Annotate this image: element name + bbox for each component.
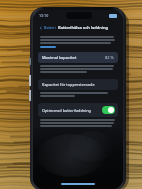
staticText: Batterihälsa och laddning — [58, 25, 109, 30]
staticText: Kapacitet för toppresterande — [42, 82, 95, 87]
button[interactable]: Optimerad batteriladdning — [38, 103, 118, 117]
button[interactable]: Maximal kapacitet — [38, 52, 118, 63]
button[interactable]: Kapacitet för toppresterande — [38, 79, 118, 90]
staticText: 82 % — [105, 55, 114, 60]
staticText: Batteri — [44, 25, 56, 30]
button[interactable]: Back to Batteri — [38, 24, 57, 31]
staticText: Maximal kapacitet — [42, 55, 77, 60]
staticText: Optimerad batteriladdning — [42, 108, 91, 113]
button[interactable]: Optimerad batteriladdning på — [102, 106, 115, 114]
staticText: 13:10 — [39, 13, 49, 18]
button[interactable]: Läs mer om batterier — [40, 46, 56, 48]
